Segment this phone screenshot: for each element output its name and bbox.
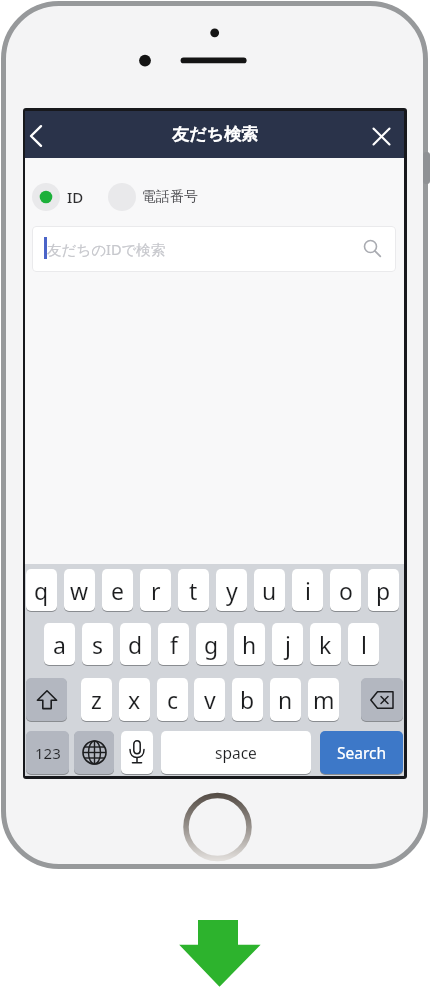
- button[interactable]: q: [26, 569, 57, 611]
- button[interactable]: o: [330, 569, 361, 611]
- staticText: o: [339, 575, 353, 606]
- staticText: space: [215, 742, 257, 763]
- staticText: q: [34, 575, 49, 606]
- button[interactable]: j: [272, 623, 303, 665]
- button[interactable]: p: [368, 569, 399, 611]
- button[interactable]: r: [140, 569, 171, 611]
- staticText: h: [242, 629, 257, 660]
- button[interactable]: space: [161, 731, 311, 774]
- staticText: g: [204, 629, 219, 660]
- staticText: k: [319, 629, 332, 660]
- button[interactable]: c: [157, 678, 188, 721]
- button[interactable]: g: [196, 623, 227, 665]
- staticText: v: [204, 684, 216, 715]
- staticText: e: [111, 575, 124, 606]
- button[interactable]: s: [82, 623, 113, 665]
- staticText: l: [361, 629, 367, 660]
- button[interactable]: y: [216, 569, 247, 611]
- button[interactable]: m: [308, 678, 339, 721]
- staticText: d: [128, 629, 143, 660]
- staticText: Search: [337, 742, 387, 763]
- button[interactable]: i: [292, 569, 323, 611]
- button[interactable]: x: [119, 678, 150, 721]
- staticText: u: [262, 575, 277, 606]
- staticText: s: [92, 629, 104, 660]
- button[interactable]: f: [158, 623, 189, 665]
- button[interactable]: v: [194, 678, 225, 721]
- staticText: y: [226, 575, 238, 606]
- button[interactable]: [26, 678, 67, 721]
- button[interactable]: ID: [32, 183, 84, 211]
- staticText: i: [305, 575, 311, 606]
- button[interactable]: a: [44, 623, 75, 665]
- button[interactable]: 友だちのIDで検索: [32, 226, 396, 272]
- button[interactable]: d: [120, 623, 151, 665]
- button[interactable]: 電話番号: [108, 183, 198, 211]
- button[interactable]: h: [234, 623, 265, 665]
- staticText: j: [285, 629, 291, 660]
- button[interactable]: l: [348, 623, 379, 665]
- staticText: z: [91, 684, 102, 715]
- button[interactable]: [371, 111, 404, 158]
- button[interactable]: k: [310, 623, 341, 665]
- staticText: a: [53, 629, 66, 660]
- button[interactable]: e: [102, 569, 133, 611]
- button[interactable]: 123: [26, 731, 69, 774]
- staticText: 友だちのIDで検索: [47, 239, 166, 259]
- button[interactable]: n: [270, 678, 301, 721]
- button[interactable]: w: [64, 569, 95, 611]
- staticText: w: [70, 575, 89, 606]
- staticText: t: [189, 575, 198, 606]
- staticText: p: [376, 575, 391, 606]
- button[interactable]: Search: [320, 731, 403, 774]
- staticText: 友だち検索: [172, 124, 258, 145]
- staticText: n: [278, 684, 293, 715]
- staticText: x: [128, 684, 141, 715]
- button[interactable]: z: [81, 678, 112, 721]
- staticText: 123: [35, 743, 61, 763]
- staticText: b: [240, 684, 255, 715]
- button[interactable]: [121, 731, 153, 774]
- button[interactable]: [361, 678, 403, 721]
- staticText: 電話番号: [142, 188, 198, 206]
- staticText: r: [151, 575, 161, 606]
- staticText: m: [313, 684, 335, 715]
- button[interactable]: [186, 796, 249, 859]
- button[interactable]: t: [178, 569, 209, 611]
- staticText: f: [170, 629, 178, 660]
- staticText: ID: [67, 187, 84, 207]
- button[interactable]: u: [254, 569, 285, 611]
- button[interactable]: b: [232, 678, 263, 721]
- button[interactable]: [25, 111, 61, 158]
- staticText: c: [167, 684, 179, 715]
- button[interactable]: [74, 731, 114, 774]
